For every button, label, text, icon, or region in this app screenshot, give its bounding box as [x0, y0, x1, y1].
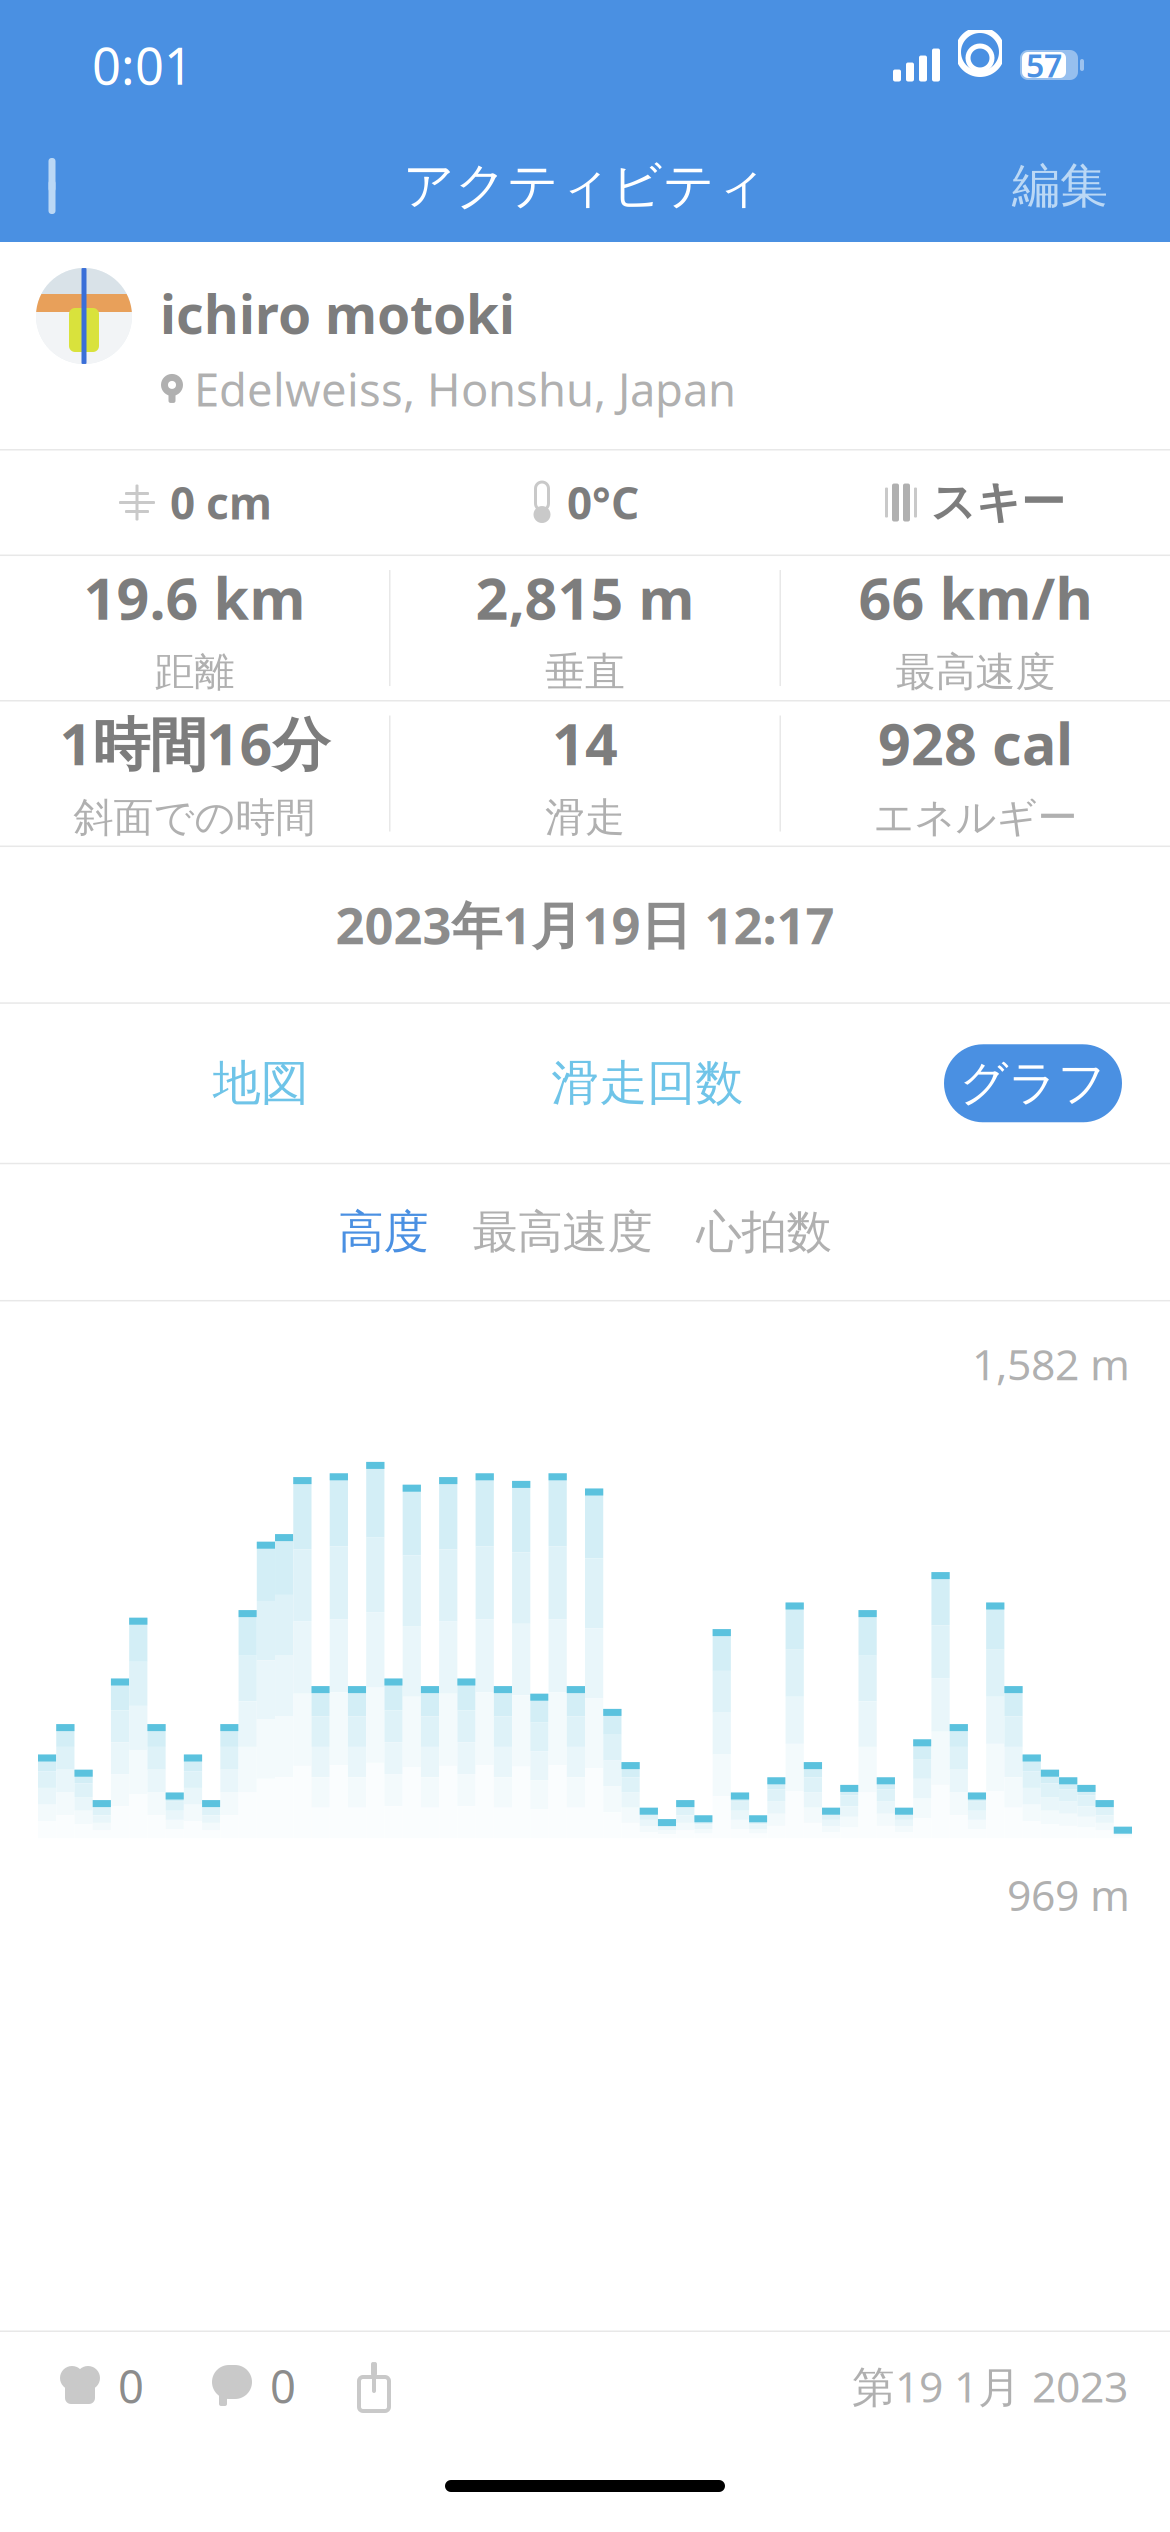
staticText: アクティビティ	[403, 155, 767, 217]
staticText: 19.6 km	[83, 559, 305, 635]
staticText: 最高速度	[895, 647, 1055, 697]
staticText: 14	[552, 705, 618, 781]
button[interactable]: 滑走回数	[521, 1032, 773, 1135]
button[interactable]: 最高速度	[450, 1186, 674, 1278]
staticText: 距離	[154, 647, 234, 697]
button[interactable]: 0	[192, 2336, 314, 2436]
button[interactable]: 地図	[171, 1032, 351, 1135]
staticText: 最高速度	[472, 1204, 652, 1260]
button[interactable]: 戻る	[12, 142, 92, 230]
staticText: 滑走	[545, 793, 625, 842]
staticText: グラフ	[959, 1054, 1106, 1113]
staticText: 編集	[1012, 156, 1108, 215]
staticText: 1,582 m	[972, 1335, 1130, 1392]
staticText: 0:01	[92, 31, 193, 99]
staticText: 969 m	[1007, 1866, 1130, 1923]
staticText: Edelweiss, Honshu, Japan	[194, 359, 736, 419]
staticText: 928 cal	[878, 705, 1073, 781]
staticText: 57	[1026, 44, 1062, 86]
staticText: 0	[270, 2356, 296, 2416]
button[interactable]: 0	[40, 2336, 162, 2436]
staticText: 1時間16分	[59, 705, 329, 781]
staticText: エネルギー	[873, 793, 1077, 842]
staticText: 0°C	[567, 473, 639, 532]
staticText: スキー	[931, 475, 1065, 529]
staticText: 0 cm	[170, 473, 272, 532]
button[interactable]: グラフ	[944, 1044, 1122, 1122]
staticText: 第19 1月 2023	[852, 2358, 1128, 2414]
staticText: 滑走回数	[551, 1054, 743, 1113]
staticText: 心拍数	[696, 1204, 831, 1260]
staticText: 地図	[213, 1054, 309, 1113]
staticText: 斜面での時間	[73, 793, 315, 842]
staticText: 2,815 m	[475, 559, 694, 635]
staticText: 高度	[338, 1204, 428, 1260]
button[interactable]: 高度	[316, 1186, 450, 1278]
staticText: 66 km/h	[858, 559, 1092, 635]
staticText: ichiro motoki	[160, 278, 515, 349]
staticText: 2023年1月19日 12:17	[335, 891, 834, 958]
button[interactable]: 共有	[332, 2343, 416, 2429]
button[interactable]: 心拍数	[674, 1186, 853, 1278]
button[interactable]: 編集	[996, 142, 1124, 230]
staticText: 垂直	[545, 647, 625, 697]
staticText: 0	[118, 2356, 144, 2416]
